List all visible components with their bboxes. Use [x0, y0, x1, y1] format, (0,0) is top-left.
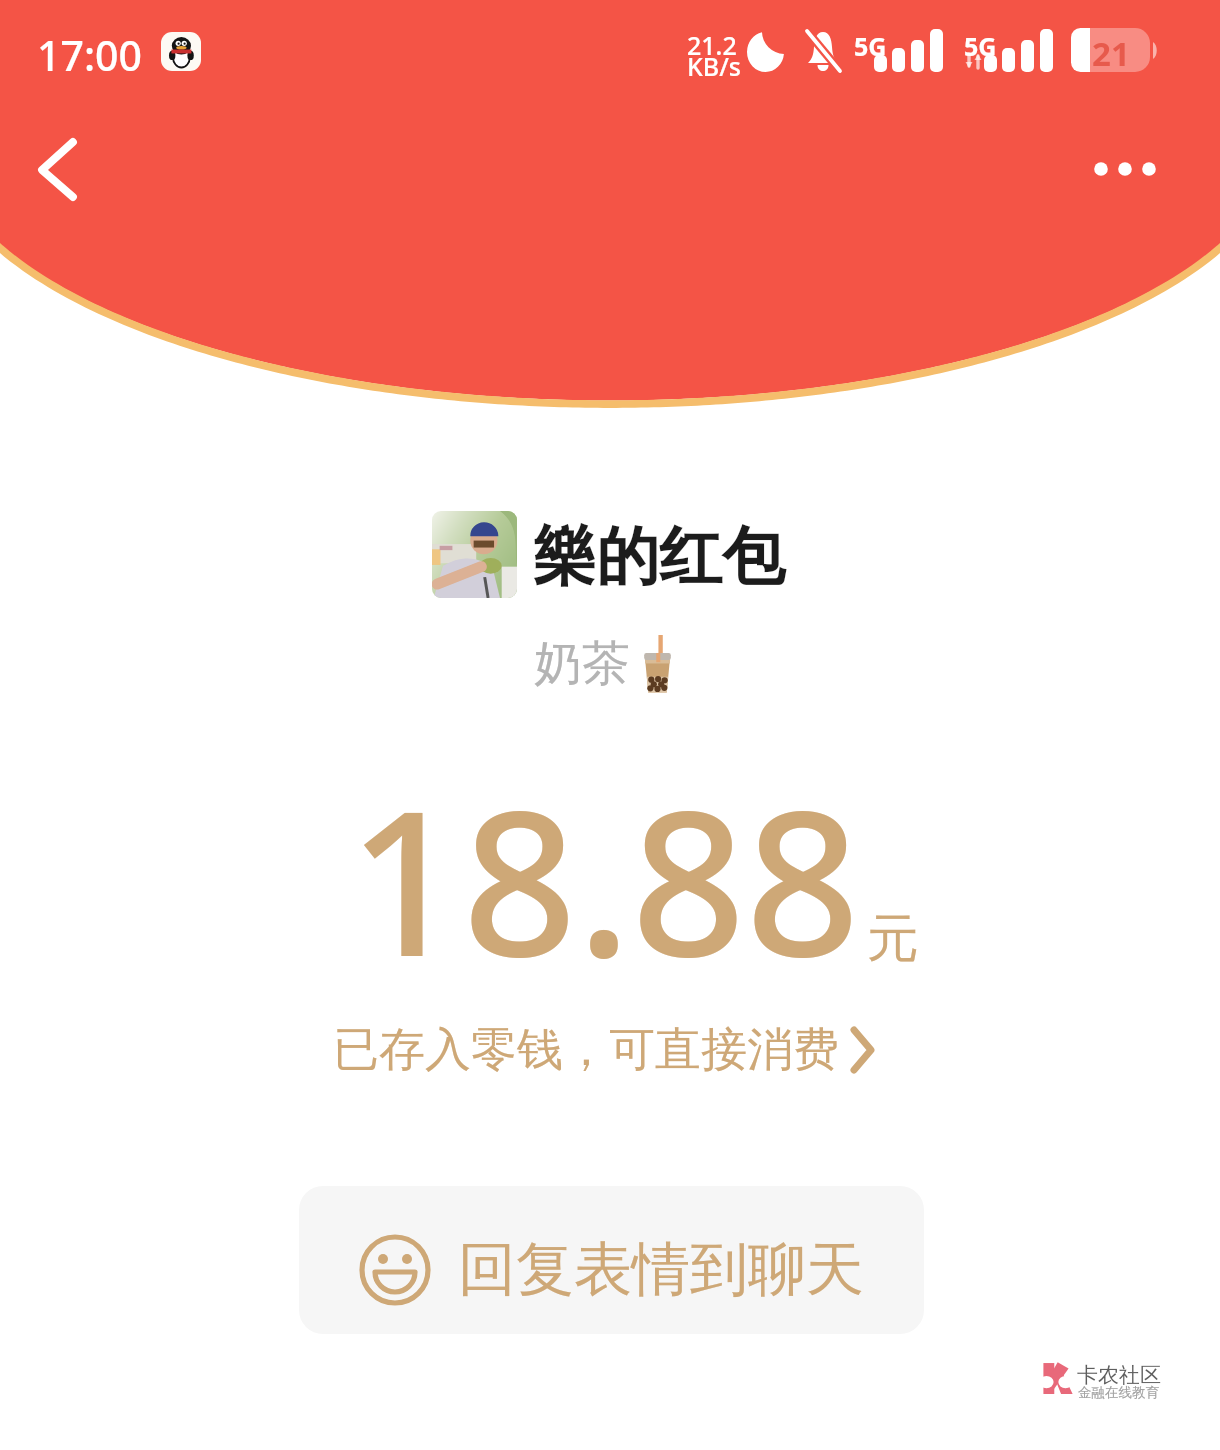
button[interactable]: 已存入零钱，可直接消费 — [315, 1013, 895, 1087]
staticText: 金融在线教育 — [1078, 1384, 1159, 1401]
staticText: 卡农社区 — [1077, 1362, 1161, 1388]
staticText: 21 — [1092, 31, 1130, 76]
button[interactable]: More options — [1078, 129, 1172, 209]
staticText: 5G — [854, 29, 887, 63]
button[interactable]: 回复表情到聊天 — [299, 1186, 924, 1334]
staticText: 回复表情到聊天 — [458, 1233, 864, 1306]
staticText: 18.88 — [348, 742, 861, 1014]
staticText: 21.2 — [687, 28, 737, 62]
staticText: 已存入零钱，可直接消费 — [333, 1021, 839, 1079]
staticText: 5G — [964, 29, 997, 63]
staticText: 奶茶 — [534, 634, 630, 694]
staticText: 元 — [867, 906, 919, 972]
button[interactable]: Back — [14, 124, 104, 216]
staticText: 樂的红包 — [533, 517, 785, 596]
staticText: 17:00 — [37, 27, 142, 83]
staticText: KB/s — [687, 49, 741, 83]
